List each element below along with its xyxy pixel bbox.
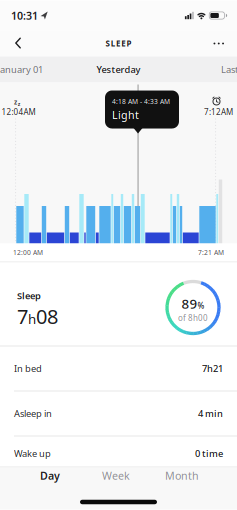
staticText: 7h08	[17, 303, 58, 329]
staticText: of 8h00	[178, 312, 208, 323]
staticText: z	[18, 100, 21, 108]
staticText: 12:04AM	[1, 107, 35, 117]
staticText: 7h21	[202, 362, 223, 375]
staticText: 10:31	[11, 8, 38, 23]
staticText: January 01	[0, 63, 43, 76]
staticText: 4 min	[198, 407, 223, 420]
staticText: SLEEP	[105, 38, 132, 49]
staticText: Asleep in	[14, 407, 52, 420]
button[interactable]: Day	[17, 467, 83, 483]
button[interactable]	[213, 36, 237, 50]
button[interactable]: January 01	[0, 63, 43, 76]
button[interactable]: Yesterday	[96, 63, 140, 76]
staticText: 12:00 AM	[13, 248, 43, 257]
staticText: z	[14, 98, 17, 106]
staticText: Last	[221, 63, 237, 76]
button[interactable]: Month	[149, 467, 215, 483]
staticText: Month	[165, 468, 199, 483]
staticText: In bed	[14, 362, 42, 375]
staticText: 7:21 AM	[198, 248, 224, 257]
staticText: Sleep	[17, 289, 41, 302]
button[interactable]: Asleep in	[0, 407, 237, 420]
button[interactable]: Last	[221, 63, 237, 76]
staticText: Wake up	[14, 447, 51, 460]
staticText: Light	[112, 108, 139, 122]
staticText: Yesterday	[96, 63, 140, 76]
staticText: 89%	[181, 295, 204, 312]
staticText: Week	[102, 468, 130, 483]
staticText: Day	[40, 468, 60, 483]
button[interactable]: Wake up	[0, 447, 237, 460]
button[interactable]: Week	[83, 467, 149, 483]
button[interactable]: In bed	[0, 362, 237, 375]
staticText: 4:18 AM - 4:33 AM	[112, 97, 170, 106]
button[interactable]	[0, 34, 21, 53]
staticText: 0 time	[195, 447, 223, 460]
staticText: 7:12AM	[204, 107, 233, 117]
